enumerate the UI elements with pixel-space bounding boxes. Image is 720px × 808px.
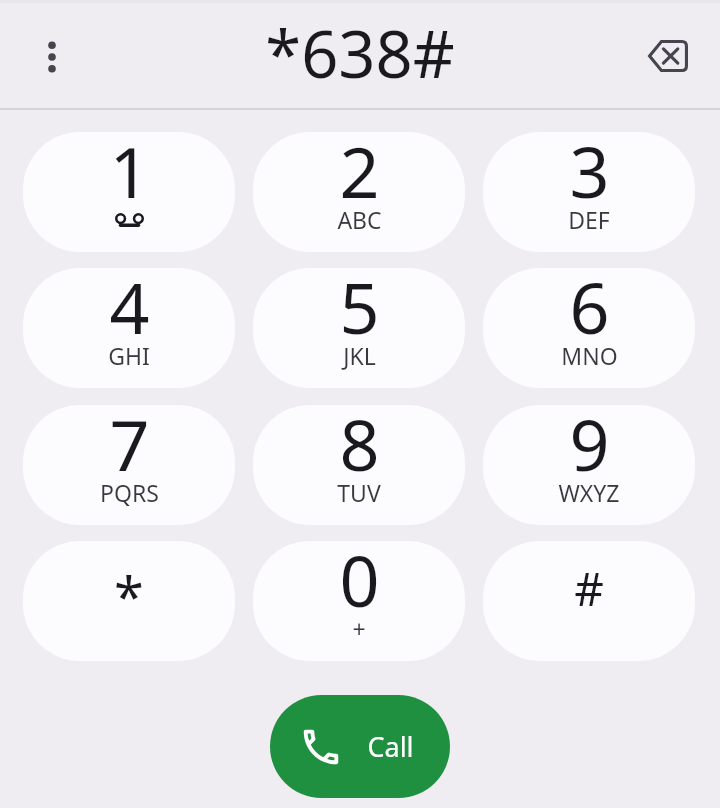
button[interactable]: 3 bbox=[483, 132, 695, 252]
staticText: + bbox=[352, 613, 366, 644]
staticText: DEF bbox=[568, 204, 610, 235]
staticText: TUV bbox=[337, 477, 381, 508]
staticText: 7 bbox=[109, 405, 150, 491]
staticText: MNO bbox=[561, 340, 618, 371]
button[interactable]: Call bbox=[270, 695, 450, 798]
staticText: 2 bbox=[339, 132, 380, 218]
staticText: * bbox=[114, 559, 144, 633]
staticText: GHI bbox=[108, 340, 150, 371]
staticText: Call bbox=[367, 728, 414, 765]
button[interactable]: Backspace bbox=[640, 28, 696, 84]
button[interactable]: * bbox=[23, 541, 235, 661]
staticText: *638# bbox=[265, 9, 455, 98]
button[interactable]: # bbox=[483, 541, 695, 661]
staticText: PQRS bbox=[100, 477, 159, 508]
button[interactable]: 7 bbox=[23, 405, 235, 525]
button[interactable]: 1 bbox=[23, 132, 235, 252]
staticText: 6 bbox=[569, 268, 610, 354]
staticText: 9 bbox=[569, 405, 610, 491]
staticText: 8 bbox=[339, 405, 380, 491]
staticText: 5 bbox=[339, 268, 380, 354]
button[interactable]: 2 bbox=[253, 132, 465, 252]
staticText: # bbox=[574, 557, 604, 620]
staticText: 1 bbox=[109, 132, 150, 218]
button[interactable]: 4 bbox=[23, 268, 235, 388]
button[interactable]: 8 bbox=[253, 405, 465, 525]
staticText: 0 bbox=[339, 541, 380, 627]
button[interactable]: 0 bbox=[253, 541, 465, 661]
staticText: 4 bbox=[109, 268, 150, 354]
button[interactable]: More options bbox=[28, 33, 76, 81]
staticText: WXYZ bbox=[558, 477, 620, 508]
staticText: 3 bbox=[569, 132, 610, 218]
button[interactable]: 9 bbox=[483, 405, 695, 525]
staticText: ABC bbox=[337, 204, 382, 235]
button[interactable]: 6 bbox=[483, 268, 695, 388]
button[interactable]: 5 bbox=[253, 268, 465, 388]
staticText: JKL bbox=[343, 340, 376, 371]
